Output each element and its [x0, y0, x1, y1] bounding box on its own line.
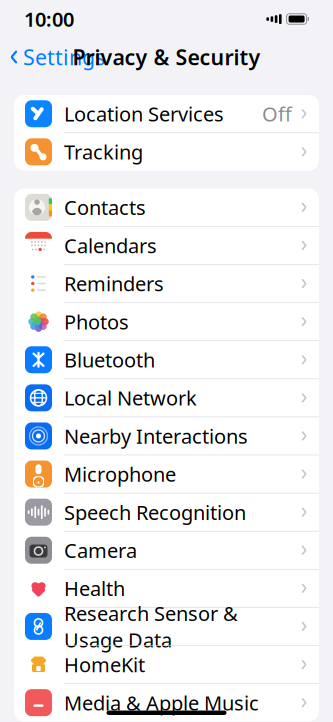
- staticText: Reminders: [64, 270, 164, 297]
- staticText: Health: [64, 575, 125, 602]
- staticText: Camera: [64, 537, 137, 564]
- button[interactable]: Research Sensor & Usage Data: [14, 608, 319, 646]
- button[interactable]: HomeKit: [14, 646, 319, 684]
- staticText: Settings: [23, 43, 105, 71]
- staticText: Calendars: [64, 232, 157, 259]
- button[interactable]: Camera: [14, 531, 319, 570]
- staticText: Off: [262, 100, 292, 127]
- staticText: Speech Recognition: [64, 499, 246, 525]
- button[interactable]: Photos: [14, 303, 319, 341]
- staticText: HomeKit: [64, 651, 145, 678]
- button[interactable]: Nearby Interactions: [14, 417, 319, 455]
- staticText: Microphone: [64, 461, 176, 487]
- staticText: Nearby Interactions: [64, 423, 248, 449]
- button[interactable]: Settings: [0, 37, 105, 77]
- button[interactable]: Calendars: [14, 227, 319, 265]
- button[interactable]: Microphone: [14, 455, 319, 493]
- staticText: Photos: [64, 308, 129, 335]
- button[interactable]: Speech Recognition: [14, 493, 319, 531]
- staticText: Bluetooth: [64, 346, 155, 373]
- button[interactable]: Tracking: [14, 133, 319, 171]
- button[interactable]: Location Services: [14, 95, 319, 133]
- staticText: Location Services: [64, 100, 224, 127]
- button[interactable]: Health: [14, 570, 319, 608]
- staticText: Contacts: [64, 194, 146, 221]
- staticText: Tracking: [64, 139, 143, 165]
- button[interactable]: Media & Apple Music: [14, 684, 319, 721]
- button[interactable]: Reminders: [14, 265, 319, 303]
- button[interactable]: Local Network: [14, 379, 319, 417]
- staticText: Research Sensor & Usage Data: [64, 600, 238, 653]
- button[interactable]: Bluetooth: [14, 341, 319, 379]
- staticText: Local Network: [64, 385, 197, 411]
- staticText: Privacy & Security: [72, 43, 260, 71]
- staticText: 10:00: [24, 6, 74, 32]
- staticText: Media & Apple Music: [64, 689, 259, 716]
- button[interactable]: Contacts: [14, 189, 319, 227]
